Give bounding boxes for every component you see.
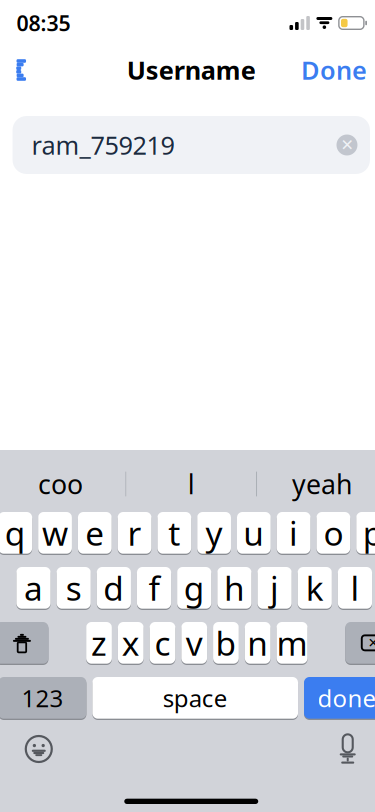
button[interactable]: l	[126, 460, 256, 508]
staticText: c	[154, 621, 170, 665]
staticText: a	[24, 566, 43, 610]
staticText: x	[122, 621, 140, 665]
staticText: k	[306, 566, 324, 610]
button[interactable]: 123	[0, 677, 86, 720]
staticText: ram_759219	[31, 128, 174, 162]
staticText: t	[168, 511, 180, 555]
button[interactable]: Clear text	[332, 130, 362, 160]
staticText: n	[247, 621, 268, 665]
button[interactable]: w	[38, 512, 72, 555]
staticText: 08:35	[16, 9, 70, 37]
button[interactable]: u	[237, 512, 271, 555]
staticText: space	[163, 682, 228, 714]
staticText: d	[103, 566, 124, 610]
staticText: yeah	[292, 466, 352, 502]
button[interactable]: j	[257, 567, 292, 610]
staticText: l	[188, 466, 195, 502]
button[interactable]: space	[92, 677, 298, 720]
button[interactable]: r	[118, 512, 151, 555]
staticText: g	[184, 566, 205, 610]
button[interactable]: v	[181, 622, 207, 665]
button[interactable]: a	[16, 567, 51, 610]
button[interactable]: y	[197, 512, 231, 555]
staticText: p	[363, 511, 375, 555]
staticText: done	[317, 682, 375, 714]
staticText: b	[215, 621, 236, 665]
button[interactable]: x	[118, 622, 144, 665]
staticText: u	[243, 511, 264, 555]
staticText: o	[323, 511, 343, 555]
button[interactable]: p	[356, 512, 375, 555]
staticText: 123	[21, 682, 63, 714]
button[interactable]: d	[97, 567, 131, 610]
staticText: r	[128, 511, 142, 555]
staticText: ✕	[340, 136, 353, 154]
staticText: h	[224, 566, 245, 610]
staticText: w	[42, 511, 68, 555]
staticText: s	[66, 566, 82, 610]
button[interactable]: yeah	[257, 460, 375, 508]
button[interactable]: o	[316, 512, 350, 555]
staticText: e	[85, 511, 104, 555]
button[interactable]: c	[150, 622, 175, 665]
staticText: q	[5, 511, 26, 555]
button[interactable]: m	[276, 622, 307, 665]
button[interactable]: n	[245, 622, 270, 665]
button[interactable]: Back	[0, 48, 41, 92]
staticText: Username	[127, 53, 256, 87]
button[interactable]: Delete	[345, 622, 375, 665]
staticText: Done	[301, 53, 367, 87]
button[interactable]: e	[78, 512, 112, 555]
button[interactable]: t	[157, 512, 191, 555]
button[interactable]: b	[213, 622, 239, 665]
staticText: v	[186, 621, 203, 665]
button[interactable]: Shift	[0, 622, 48, 665]
button[interactable]: l	[338, 567, 372, 610]
staticText: y	[206, 511, 223, 555]
button[interactable]: Emoji keyboard	[12, 722, 66, 776]
staticText: z	[91, 621, 107, 665]
button[interactable]: f	[137, 567, 171, 610]
button[interactable]: Done	[285, 43, 375, 97]
staticText: ✕	[368, 635, 375, 650]
staticText: f	[148, 566, 159, 610]
button[interactable]: s	[57, 567, 91, 610]
button[interactable]: i	[277, 512, 310, 555]
button[interactable]: q	[0, 512, 32, 555]
staticText: i	[289, 511, 298, 555]
staticText: l	[350, 566, 359, 610]
staticText: m	[276, 621, 307, 665]
button[interactable]: k	[298, 567, 332, 610]
button[interactable]: h	[217, 567, 251, 610]
button[interactable]: coo	[0, 460, 125, 508]
staticText: j	[270, 566, 279, 610]
button[interactable]: Dictation	[325, 721, 371, 776]
button[interactable]: z	[86, 622, 112, 665]
button[interactable]: g	[177, 567, 211, 610]
button[interactable]: done	[304, 677, 375, 720]
staticText: coo	[38, 466, 83, 502]
